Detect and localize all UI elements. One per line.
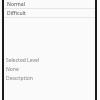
button[interactable]: Normal	[4, 0, 96, 8]
staticText: Difficult	[7, 10, 26, 17]
button[interactable]: Difficult	[4, 9, 96, 17]
staticText: Description	[6, 75, 33, 82]
staticText: Normal	[7, 1, 25, 8]
staticText: None	[6, 66, 19, 73]
staticText: Selected Level	[6, 57, 40, 64]
